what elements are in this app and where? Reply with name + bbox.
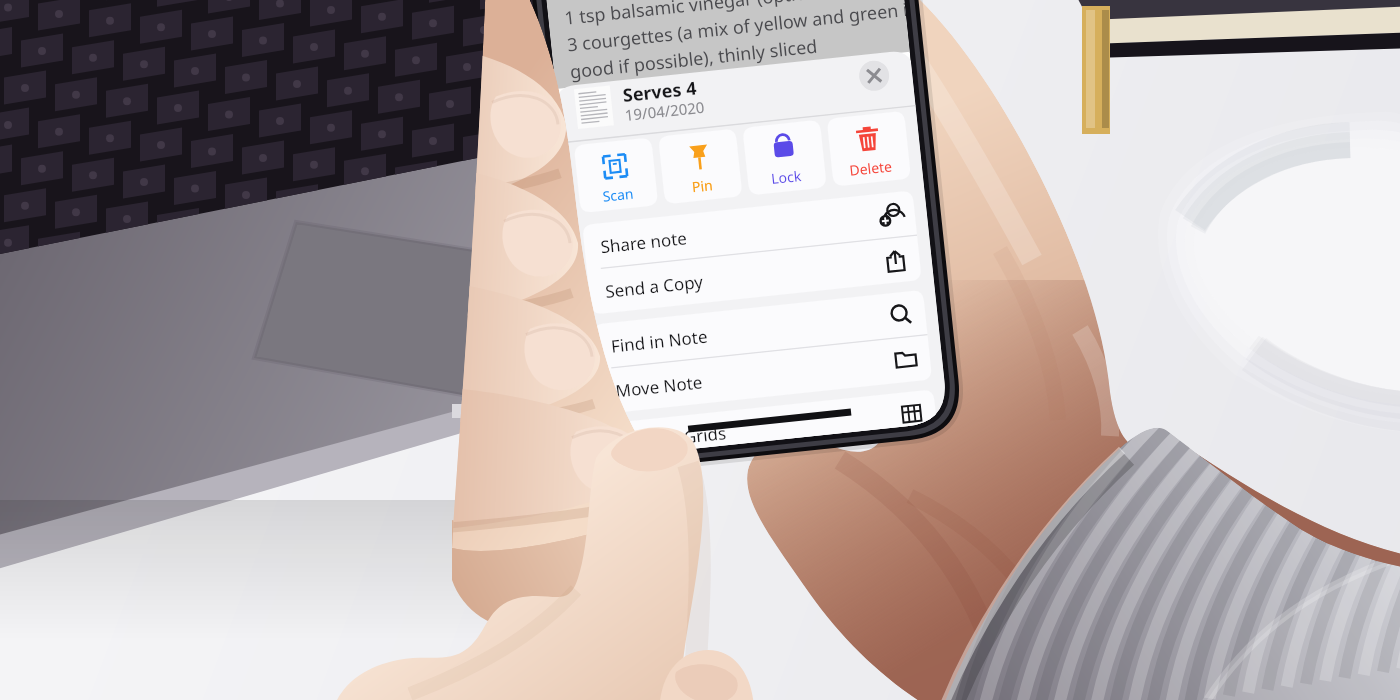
button[interactable] bbox=[0, 0, 1400, 700]
